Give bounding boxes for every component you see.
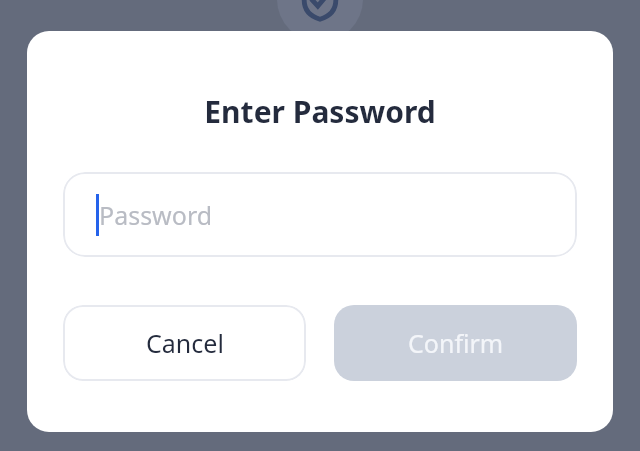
button[interactable]: Secure (277, 0, 363, 42)
staticText: Enter Password (204, 91, 436, 132)
button[interactable]: Cancel (63, 305, 306, 381)
button[interactable]: Confirm (334, 305, 577, 381)
button[interactable]: Password input (63, 172, 577, 257)
staticText: Password (99, 198, 213, 232)
staticText: Confirm (408, 326, 504, 360)
staticText: Cancel (146, 326, 224, 360)
